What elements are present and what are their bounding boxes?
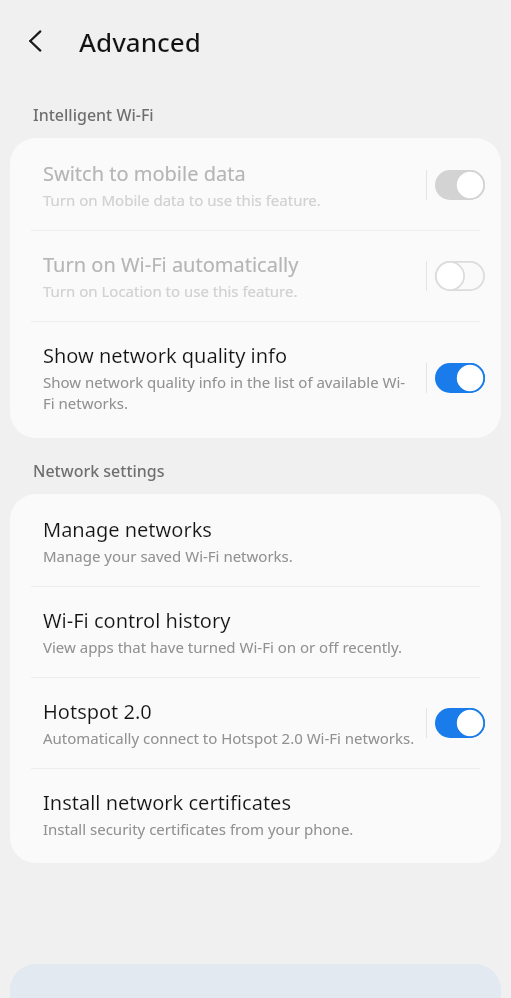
staticText: Hotspot 2.0: [43, 698, 152, 725]
staticText: Advanced: [79, 24, 201, 59]
staticText: Manage your saved Wi-Fi networks.: [43, 546, 293, 566]
button[interactable]: Switch to mobile data: [10, 138, 501, 230]
staticText: Turn on Location to use this feature.: [43, 281, 298, 301]
button[interactable]: Manage networks: [10, 494, 501, 586]
button[interactable]: Switch off: [427, 253, 493, 299]
staticText: Manage networks: [43, 516, 212, 543]
button[interactable]: Switch on: [427, 162, 493, 208]
staticText: Show network quality info in the list of…: [43, 372, 416, 414]
staticText: Turn on Mobile data to use this feature.: [43, 190, 321, 210]
staticText: Switch to mobile data: [43, 160, 246, 187]
staticText: Automatically connect to Hotspot 2.0 Wi-…: [43, 728, 415, 748]
staticText: Intelligent Wi-Fi: [33, 104, 511, 126]
button[interactable]: Switch on: [427, 355, 493, 401]
button[interactable]: Switch on: [427, 700, 493, 746]
staticText: Network settings: [33, 460, 511, 482]
button[interactable]: Show network quality info: [10, 322, 501, 438]
staticText: Turn on Wi-Fi automatically: [43, 251, 299, 278]
button[interactable]: Install network certificates: [10, 769, 501, 863]
staticText: View apps that have turned Wi-Fi on or o…: [43, 637, 403, 657]
button[interactable]: Wi-Fi control history: [10, 587, 501, 677]
staticText: Show network quality info: [43, 342, 288, 369]
button[interactable]: Hotspot 2.0: [10, 678, 501, 768]
staticText: Install security certificates from your …: [43, 819, 354, 839]
staticText: Wi-Fi control history: [43, 607, 231, 634]
staticText: Install network certificates: [43, 789, 291, 816]
button[interactable]: Back: [13, 18, 59, 64]
button[interactable]: Turn on Wi-Fi automatically: [10, 231, 501, 321]
